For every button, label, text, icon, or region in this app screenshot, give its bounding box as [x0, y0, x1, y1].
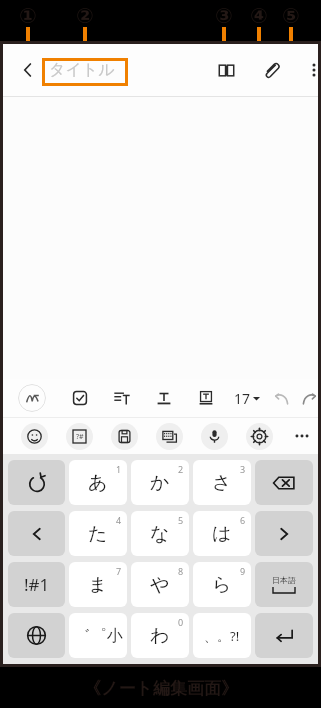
- staticText: 7: [116, 565, 122, 577]
- staticText: 、。?!: [204, 627, 240, 645]
- staticText: わ: [150, 624, 170, 648]
- button[interactable]: Text format: [145, 379, 183, 417]
- staticText: 17: [234, 389, 251, 408]
- button[interactable]: わ: [131, 613, 189, 658]
- staticText: ら: [212, 573, 232, 597]
- staticText: 1: [116, 463, 122, 475]
- button[interactable]: Cursor right: [255, 511, 313, 556]
- staticText: あ: [88, 471, 108, 495]
- staticText: ま: [88, 573, 108, 597]
- button[interactable]: Paragraph style: [103, 379, 141, 417]
- staticText: ?#: [76, 432, 84, 442]
- staticText: 0: [178, 616, 184, 628]
- button[interactable]: Backspace: [255, 460, 313, 505]
- button[interactable]: Text box: [187, 379, 225, 417]
- button[interactable]: た: [69, 511, 127, 556]
- button[interactable]: Voice input: [193, 418, 235, 454]
- staticText: ③: [215, 4, 233, 28]
- button[interactable]: Redo: [295, 379, 321, 417]
- staticText: タイトル: [49, 60, 115, 80]
- button[interactable]: Cursor left: [8, 511, 65, 556]
- staticText: は: [212, 522, 232, 546]
- staticText: 3: [240, 463, 246, 475]
- button[interactable]: な: [131, 511, 189, 556]
- staticText: ②: [76, 4, 94, 28]
- staticText: 8: [178, 565, 184, 577]
- staticText: か: [150, 471, 170, 495]
- staticText: ゛゜小: [74, 626, 123, 646]
- button[interactable]: Space: [255, 562, 313, 607]
- staticText: 2: [178, 463, 184, 475]
- staticText: た: [88, 522, 108, 546]
- button[interactable]: Clipboard: [103, 418, 145, 454]
- button[interactable]: ら: [193, 562, 251, 607]
- button[interactable]: Attach: [254, 53, 288, 87]
- button[interactable]: は: [193, 511, 251, 556]
- button[interactable]: ま: [69, 562, 127, 607]
- button[interactable]: か: [131, 460, 189, 505]
- staticText: さ: [212, 471, 232, 495]
- staticText: 9: [240, 565, 246, 577]
- button[interactable]: More: [286, 418, 318, 454]
- button[interactable]: や: [131, 562, 189, 607]
- staticText: ⑤: [282, 4, 300, 28]
- button[interactable]: 、。?!: [193, 613, 251, 658]
- staticText: 4: [116, 514, 122, 526]
- button[interactable]: ゛゜小: [69, 613, 127, 658]
- button[interactable]: Keyboard layout: [148, 418, 190, 454]
- button[interactable]: Undo: [267, 379, 295, 417]
- button[interactable]: Enter: [255, 613, 313, 658]
- button[interactable]: Symbols: [58, 418, 100, 454]
- button[interactable]: タイトル: [49, 44, 169, 96]
- button[interactable]: さ: [193, 460, 251, 505]
- button[interactable]: More options: [297, 53, 321, 87]
- button[interactable]: 17: [227, 379, 267, 417]
- staticText: や: [150, 573, 170, 597]
- staticText: 6: [240, 514, 246, 526]
- button[interactable]: Emoji: [13, 418, 55, 454]
- button[interactable]: Settings: [238, 418, 280, 454]
- staticText: !#1: [24, 573, 50, 596]
- staticText: な: [150, 522, 170, 546]
- button[interactable]: Handwriting: [13, 379, 51, 417]
- button[interactable]: Reader view: [209, 53, 243, 87]
- button[interactable]: Checklist: [61, 379, 99, 417]
- staticText: ①: [19, 4, 37, 28]
- button[interactable]: Undo: [8, 460, 65, 505]
- button[interactable]: Change language: [8, 613, 65, 658]
- staticText: 《ノート編集画面》: [84, 678, 238, 699]
- staticText: 日本語: [272, 575, 296, 585]
- staticText: 5: [178, 514, 184, 526]
- button[interactable]: あ: [69, 460, 127, 505]
- staticText: ④: [250, 4, 268, 28]
- button[interactable]: !#1: [8, 562, 65, 607]
- button[interactable]: Back: [11, 44, 45, 96]
